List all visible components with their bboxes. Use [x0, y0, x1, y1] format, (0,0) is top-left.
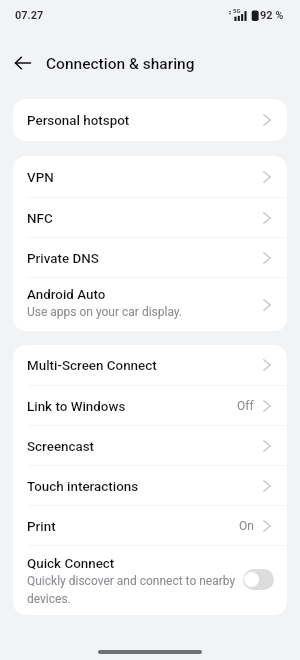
- staticText: Android Auto: [27, 286, 106, 302]
- staticText: Print: [27, 518, 56, 534]
- staticText: Touch interactions: [27, 478, 139, 494]
- staticText: Off: [237, 399, 254, 413]
- button[interactable]: VPN: [13, 156, 287, 197]
- button[interactable]: Screencast: [13, 426, 287, 465]
- staticText: Private DNS: [27, 250, 99, 266]
- staticText: 92 %: [260, 9, 284, 22]
- staticText: Personal hotspot: [27, 112, 130, 128]
- button[interactable]: Back: [8, 48, 38, 78]
- button[interactable]: NFC: [13, 198, 287, 237]
- staticText: Use apps on your car display.: [27, 302, 183, 320]
- staticText: Connection & sharing: [46, 55, 195, 73]
- staticText: Quick Connect: [27, 555, 115, 571]
- staticText: VPN: [27, 169, 54, 185]
- staticText: Multi-Screen Connect: [27, 357, 157, 373]
- button[interactable]: Multi-Screen Connect: [13, 345, 287, 385]
- button[interactable]: Quick Connect toggle: [243, 569, 274, 590]
- staticText: NFC: [27, 210, 53, 226]
- button[interactable]: Android Auto: [13, 278, 287, 331]
- staticText: Link to Windows: [27, 398, 126, 414]
- button[interactable]: Private DNS: [13, 238, 287, 277]
- staticText: 5G: [233, 7, 241, 14]
- staticText: On: [239, 519, 254, 533]
- staticText: Quickly discover and connect to nearby d…: [27, 571, 243, 607]
- staticText: 07.27: [15, 9, 44, 22]
- button[interactable]: Print: [13, 506, 287, 545]
- button[interactable]: Link to Windows: [13, 386, 287, 425]
- staticText: Screencast: [27, 438, 95, 454]
- button[interactable]: Quick Connect: [13, 546, 287, 615]
- button[interactable]: Touch interactions: [13, 466, 287, 505]
- button[interactable]: Personal hotspot: [13, 99, 287, 141]
